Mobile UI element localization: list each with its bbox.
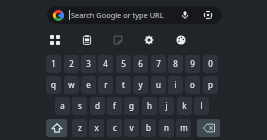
staticText: r <box>104 79 108 90</box>
button[interactable]: Sticker <box>110 32 126 48</box>
staticText: y <box>138 79 143 90</box>
staticText: p <box>208 79 213 90</box>
button[interactable]: a <box>55 97 70 115</box>
staticText: c <box>113 122 117 133</box>
staticText: a <box>60 100 65 111</box>
staticText: w <box>68 79 75 90</box>
button[interactable]: u <box>151 76 166 94</box>
button[interactable]: f <box>107 97 122 115</box>
staticText: u <box>156 79 161 90</box>
staticText: 7 <box>156 58 161 69</box>
staticText: 9 <box>190 58 195 69</box>
button[interactable]: 6 <box>133 55 148 73</box>
staticText: 1 <box>51 58 56 69</box>
staticText: v <box>129 122 134 133</box>
button[interactable]: x <box>89 119 104 137</box>
button[interactable]: 8 <box>168 55 183 73</box>
staticText: z <box>78 122 82 133</box>
staticText: 5 <box>121 58 126 69</box>
button[interactable]: w <box>64 76 79 94</box>
staticText: 0 <box>208 58 213 69</box>
staticText: j <box>165 100 168 111</box>
button[interactable]: Backspace <box>197 119 220 137</box>
staticText: q <box>51 79 56 90</box>
button[interactable]: Voice search <box>177 7 193 23</box>
staticText: 3 <box>86 58 91 69</box>
staticText: 8 <box>173 58 178 69</box>
button[interactable]: q <box>46 76 61 94</box>
button[interactable]: b <box>141 119 156 137</box>
button[interactable]: r <box>98 76 113 94</box>
button[interactable]: k <box>177 97 192 115</box>
button[interactable]: 3 <box>81 55 96 73</box>
staticText: h <box>147 100 152 111</box>
staticText: Search Google or type URL <box>71 10 164 20</box>
button[interactable]: v <box>124 119 139 137</box>
staticText: f <box>113 100 116 111</box>
button[interactable]: Theme <box>173 32 189 48</box>
button[interactable]: o <box>185 76 200 94</box>
staticText: n <box>164 122 169 133</box>
staticText: e <box>86 79 91 90</box>
button[interactable]: p <box>203 76 218 94</box>
staticText: m <box>180 122 188 133</box>
staticText: 4 <box>103 58 108 69</box>
button[interactable]: Shift <box>46 119 67 137</box>
button[interactable]: d <box>90 97 105 115</box>
button[interactable]: 9 <box>185 55 200 73</box>
button[interactable]: n <box>159 119 174 137</box>
button[interactable]: s <box>72 97 87 115</box>
button[interactable]: Clipboard <box>79 32 95 48</box>
button[interactable]: i <box>168 76 183 94</box>
staticText: o <box>190 79 195 90</box>
button[interactable]: y <box>133 76 148 94</box>
staticText: 6 <box>138 58 143 69</box>
button[interactable]: h <box>142 97 157 115</box>
staticText: b <box>146 122 151 133</box>
button[interactable]: g <box>124 97 139 115</box>
button[interactable]: z <box>72 119 87 137</box>
button[interactable]: l <box>194 97 209 115</box>
button[interactable]: Google Lens <box>200 7 216 23</box>
button[interactable]: 1 <box>46 55 61 73</box>
staticText: g <box>129 100 134 111</box>
button[interactable]: t <box>116 76 131 94</box>
button[interactable]: 0 <box>203 55 218 73</box>
staticText: t <box>122 79 125 90</box>
button[interactable]: m <box>176 119 191 137</box>
staticText: k <box>182 100 187 111</box>
button[interactable]: 5 <box>116 55 131 73</box>
staticText: s <box>78 100 82 111</box>
button[interactable]: 4 <box>98 55 113 73</box>
button[interactable]: c <box>107 119 122 137</box>
button[interactable]: Search Google or type URL <box>47 6 222 24</box>
staticText: i <box>174 79 177 90</box>
button[interactable]: Settings <box>141 32 157 48</box>
staticText: d <box>95 100 100 111</box>
button[interactable]: 7 <box>151 55 166 73</box>
staticText: 2 <box>69 58 74 69</box>
button[interactable]: Apps <box>47 32 63 48</box>
staticText: l <box>200 100 203 111</box>
button[interactable]: j <box>159 97 174 115</box>
button[interactable]: 2 <box>64 55 79 73</box>
button[interactable]: e <box>81 76 96 94</box>
staticText: x <box>94 122 99 133</box>
